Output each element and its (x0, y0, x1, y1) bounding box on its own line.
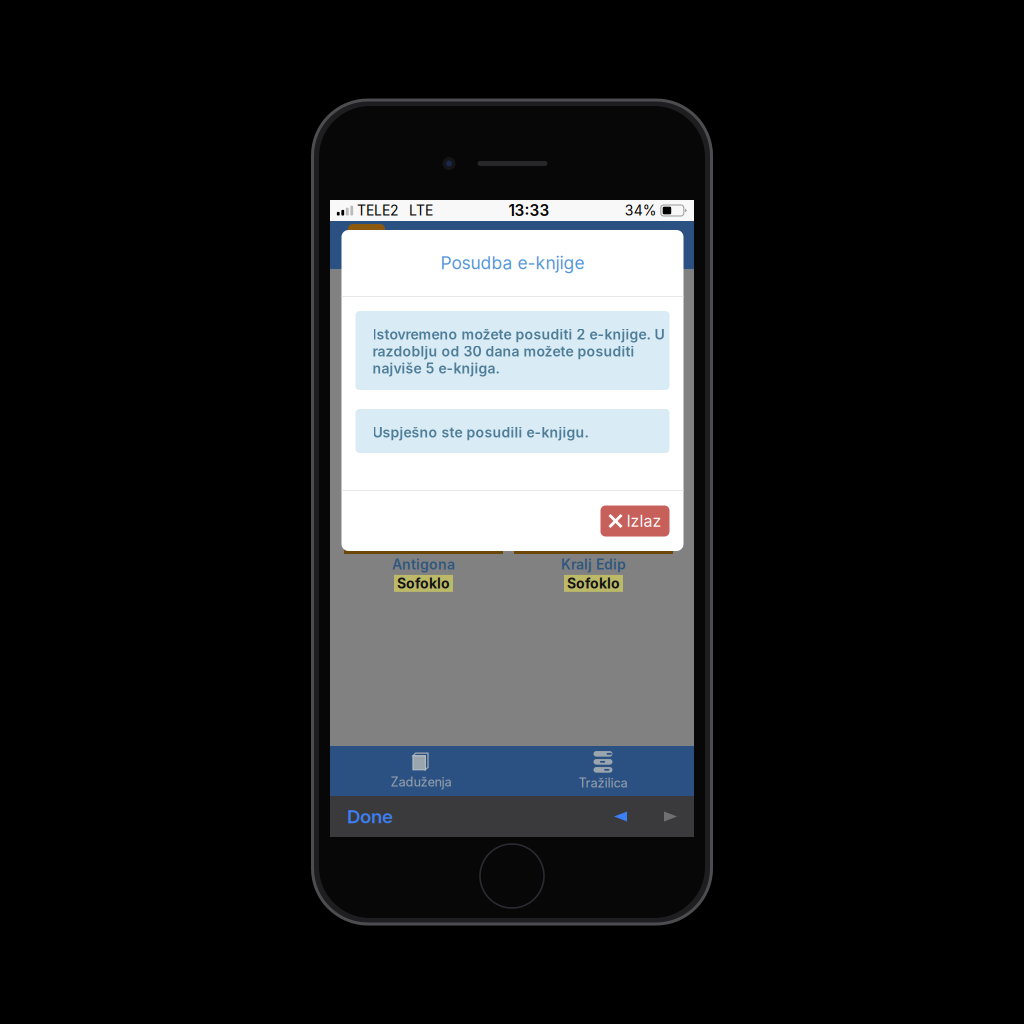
staticText: Kralj Edip (561, 556, 626, 573)
staticText: Istovremeno možete posuditi 2 e-knjige. … (372, 326, 664, 377)
staticText: Zaduženja (390, 774, 451, 790)
staticText: Done (347, 805, 393, 828)
button[interactable]: Izlaz (600, 505, 669, 536)
staticText: Sofoklo (397, 575, 450, 592)
staticText: Antigona (392, 556, 455, 573)
button[interactable]: Tražilica (512, 746, 694, 796)
staticText: Izlaz (626, 511, 661, 531)
staticText: Tražilica (578, 775, 627, 791)
staticText: 34% (625, 202, 657, 219)
staticText: LTE (409, 202, 433, 219)
staticText: Sofoklo (567, 575, 620, 592)
staticText: TELE2 (357, 202, 399, 219)
staticText: Posudba e-knjige (440, 252, 584, 273)
button[interactable]: Done (347, 796, 407, 837)
button[interactable]: Zaduženja (330, 746, 512, 796)
button[interactable]: Next field (651, 797, 690, 835)
staticText: Uspješno ste posudili e-knjigu. (372, 424, 588, 441)
staticText: 13:33 (508, 201, 549, 220)
button[interactable]: Previous field (601, 797, 640, 835)
